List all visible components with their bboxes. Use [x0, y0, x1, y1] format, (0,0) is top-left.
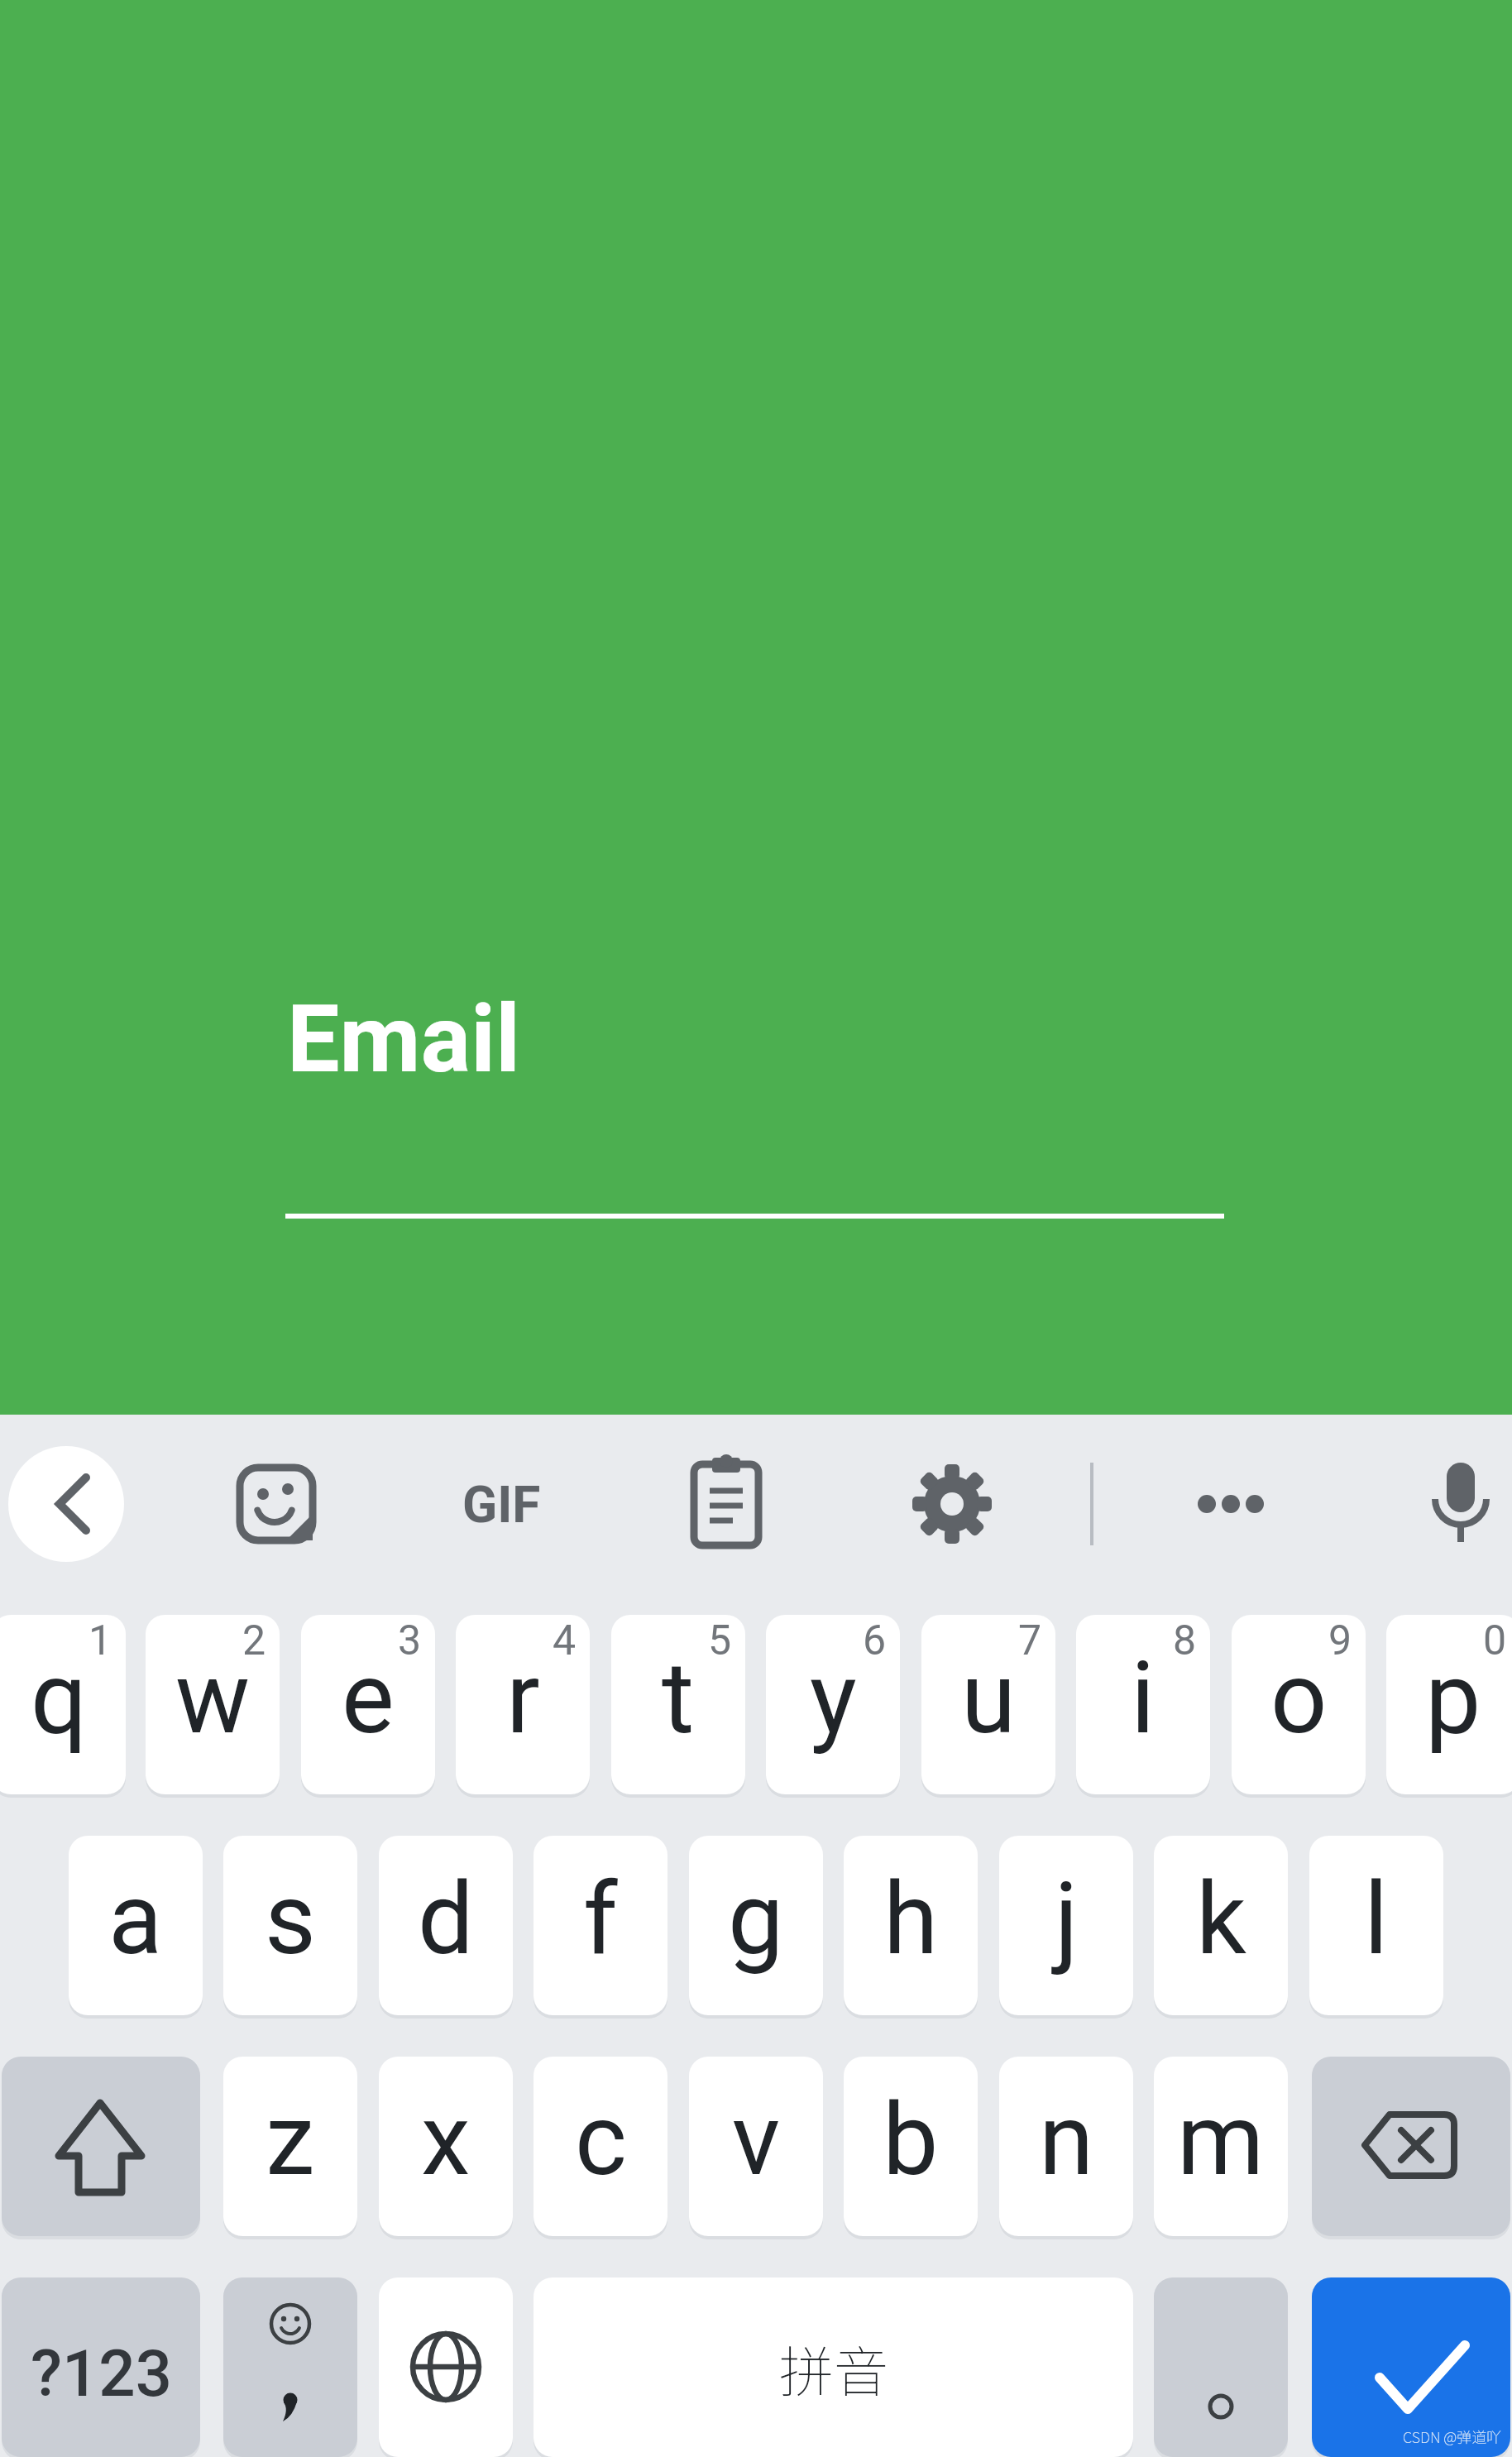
- staticText: 6: [863, 1616, 887, 1665]
- button[interactable]: ?123: [2, 2277, 200, 2457]
- staticText: 1: [89, 1616, 112, 1665]
- staticText: n: [1039, 2082, 1094, 2199]
- button[interactable]: s: [223, 1836, 357, 2015]
- button[interactable]: [8, 1446, 124, 1562]
- button[interactable]: e: [301, 1615, 435, 1794]
- staticText: c: [575, 2082, 627, 2199]
- button[interactable]: [1312, 2057, 1510, 2236]
- button[interactable]: [685, 1454, 768, 1554]
- staticText: GIF: [462, 1474, 541, 1535]
- staticText: Email: [287, 984, 520, 1094]
- staticText: 5: [708, 1616, 732, 1665]
- button[interactable]: 拼音: [534, 2277, 1133, 2457]
- staticText: z: [266, 2082, 315, 2199]
- button[interactable]: [223, 2277, 357, 2457]
- staticText: q: [31, 1640, 88, 1757]
- staticText: k: [1196, 1861, 1246, 1978]
- button[interactable]: [2, 2057, 200, 2236]
- button[interactable]: n: [999, 2057, 1133, 2236]
- staticText: a: [108, 1861, 163, 1978]
- staticText: b: [883, 2082, 939, 2199]
- staticText: l: [1364, 1861, 1389, 1978]
- staticText: 3: [398, 1616, 422, 1665]
- staticText: 0: [1483, 1616, 1507, 1665]
- staticText: 4: [553, 1616, 577, 1665]
- button[interactable]: b: [844, 2057, 978, 2236]
- button[interactable]: m: [1154, 2057, 1288, 2236]
- button[interactable]: a: [69, 1836, 203, 2015]
- button[interactable]: d: [379, 1836, 513, 2015]
- staticText: 8: [1173, 1616, 1197, 1665]
- button[interactable]: j: [999, 1836, 1133, 2015]
- button[interactable]: z: [223, 2057, 357, 2236]
- staticText: 拼音: [779, 2328, 888, 2407]
- staticText: 7: [1018, 1616, 1042, 1665]
- staticText: j: [1055, 1861, 1079, 1978]
- button[interactable]: [1189, 1463, 1272, 1545]
- staticText: 9: [1328, 1616, 1352, 1665]
- button[interactable]: [1312, 2277, 1510, 2457]
- button[interactable]: [1419, 1456, 1502, 1552]
- staticText: g: [728, 1861, 784, 1978]
- staticText: e: [342, 1640, 395, 1757]
- button[interactable]: w: [146, 1615, 280, 1794]
- staticText: CSDN @弹道吖: [1403, 2426, 1502, 2447]
- staticText: i: [1131, 1640, 1156, 1757]
- staticText: ?123: [31, 2336, 172, 2411]
- button[interactable]: l: [1309, 1836, 1443, 2015]
- staticText: 2: [242, 1616, 266, 1665]
- button[interactable]: [1154, 2277, 1288, 2457]
- staticText: m: [1177, 2082, 1265, 2199]
- button[interactable]: i: [1076, 1615, 1210, 1794]
- staticText: o: [1270, 1640, 1328, 1757]
- button[interactable]: o: [1232, 1615, 1366, 1794]
- button[interactable]: p: [1386, 1615, 1512, 1794]
- staticText: r: [506, 1640, 540, 1757]
- button[interactable]: h: [844, 1836, 978, 2015]
- button[interactable]: t: [611, 1615, 745, 1794]
- button[interactable]: GIF: [452, 1464, 551, 1544]
- staticText: x: [421, 2082, 471, 2199]
- button[interactable]: r: [456, 1615, 590, 1794]
- staticText: w: [175, 1640, 251, 1757]
- staticText: p: [1425, 1640, 1481, 1757]
- button[interactable]: c: [534, 2057, 667, 2236]
- button[interactable]: f: [534, 1836, 667, 2015]
- staticText: s: [265, 1861, 316, 1978]
- staticText: v: [732, 2082, 781, 2199]
- button[interactable]: g: [689, 1836, 823, 2015]
- button[interactable]: y: [766, 1615, 900, 1794]
- button[interactable]: [911, 1463, 993, 1545]
- button[interactable]: k: [1154, 1836, 1288, 2015]
- button[interactable]: [235, 1463, 318, 1545]
- staticText: h: [883, 1861, 939, 1978]
- button[interactable]: [379, 2277, 513, 2457]
- button[interactable]: x: [379, 2057, 513, 2236]
- staticText: d: [418, 1861, 474, 1978]
- button[interactable]: v: [689, 2057, 823, 2236]
- button[interactable]: q: [0, 1615, 126, 1794]
- staticText: f: [583, 1861, 618, 1978]
- staticText: t: [662, 1640, 695, 1757]
- staticText: u: [961, 1640, 1017, 1757]
- button[interactable]: u: [921, 1615, 1055, 1794]
- staticText: y: [810, 1640, 857, 1757]
